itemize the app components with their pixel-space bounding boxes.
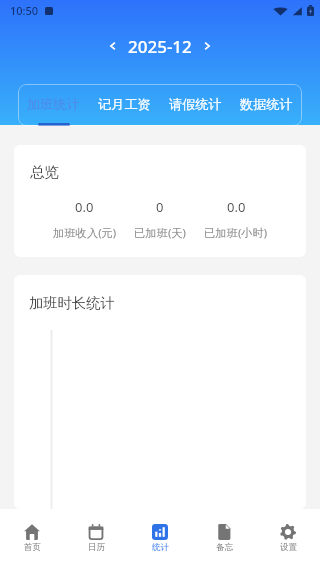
button[interactable]: Previous month xyxy=(101,34,125,58)
button[interactable]: 请假统计 xyxy=(160,84,231,126)
staticText: 日历 xyxy=(88,542,105,553)
staticText: 备忘 xyxy=(216,542,233,553)
button[interactable]: 备忘 xyxy=(192,509,256,569)
staticText: 请假统计 xyxy=(169,96,222,113)
button[interactable]: 记月工资 xyxy=(89,84,160,126)
staticText: 0 xyxy=(156,198,164,216)
button[interactable]: 加班统计 xyxy=(18,84,89,126)
staticText: 已加班(小时) xyxy=(204,225,268,240)
button[interactable]: 首页 xyxy=(0,509,64,569)
staticText: 加班统计 xyxy=(27,96,80,113)
staticText: 首页 xyxy=(24,542,41,553)
staticText: 加班时长统计 xyxy=(29,294,115,312)
staticText: 总览 xyxy=(30,163,59,181)
button[interactable]: 数据统计 xyxy=(231,84,302,126)
staticText: 统计 xyxy=(152,542,169,553)
staticText: 2025-12 xyxy=(128,35,192,58)
button[interactable]: 设置 xyxy=(256,509,320,569)
staticText: 0.0 xyxy=(227,198,246,216)
staticText: 加班收入(元) xyxy=(53,225,117,240)
button[interactable]: 统计 xyxy=(128,509,192,569)
staticText: 数据统计 xyxy=(240,96,293,113)
button[interactable]: 日历 xyxy=(64,509,128,569)
staticText: 10:50 xyxy=(10,3,39,18)
staticText: 已加班(天) xyxy=(134,225,186,240)
staticText: 0.0 xyxy=(75,198,94,216)
button[interactable]: Next month xyxy=(195,34,219,58)
staticText: 记月工资 xyxy=(98,96,151,113)
staticText: 设置 xyxy=(280,542,297,553)
